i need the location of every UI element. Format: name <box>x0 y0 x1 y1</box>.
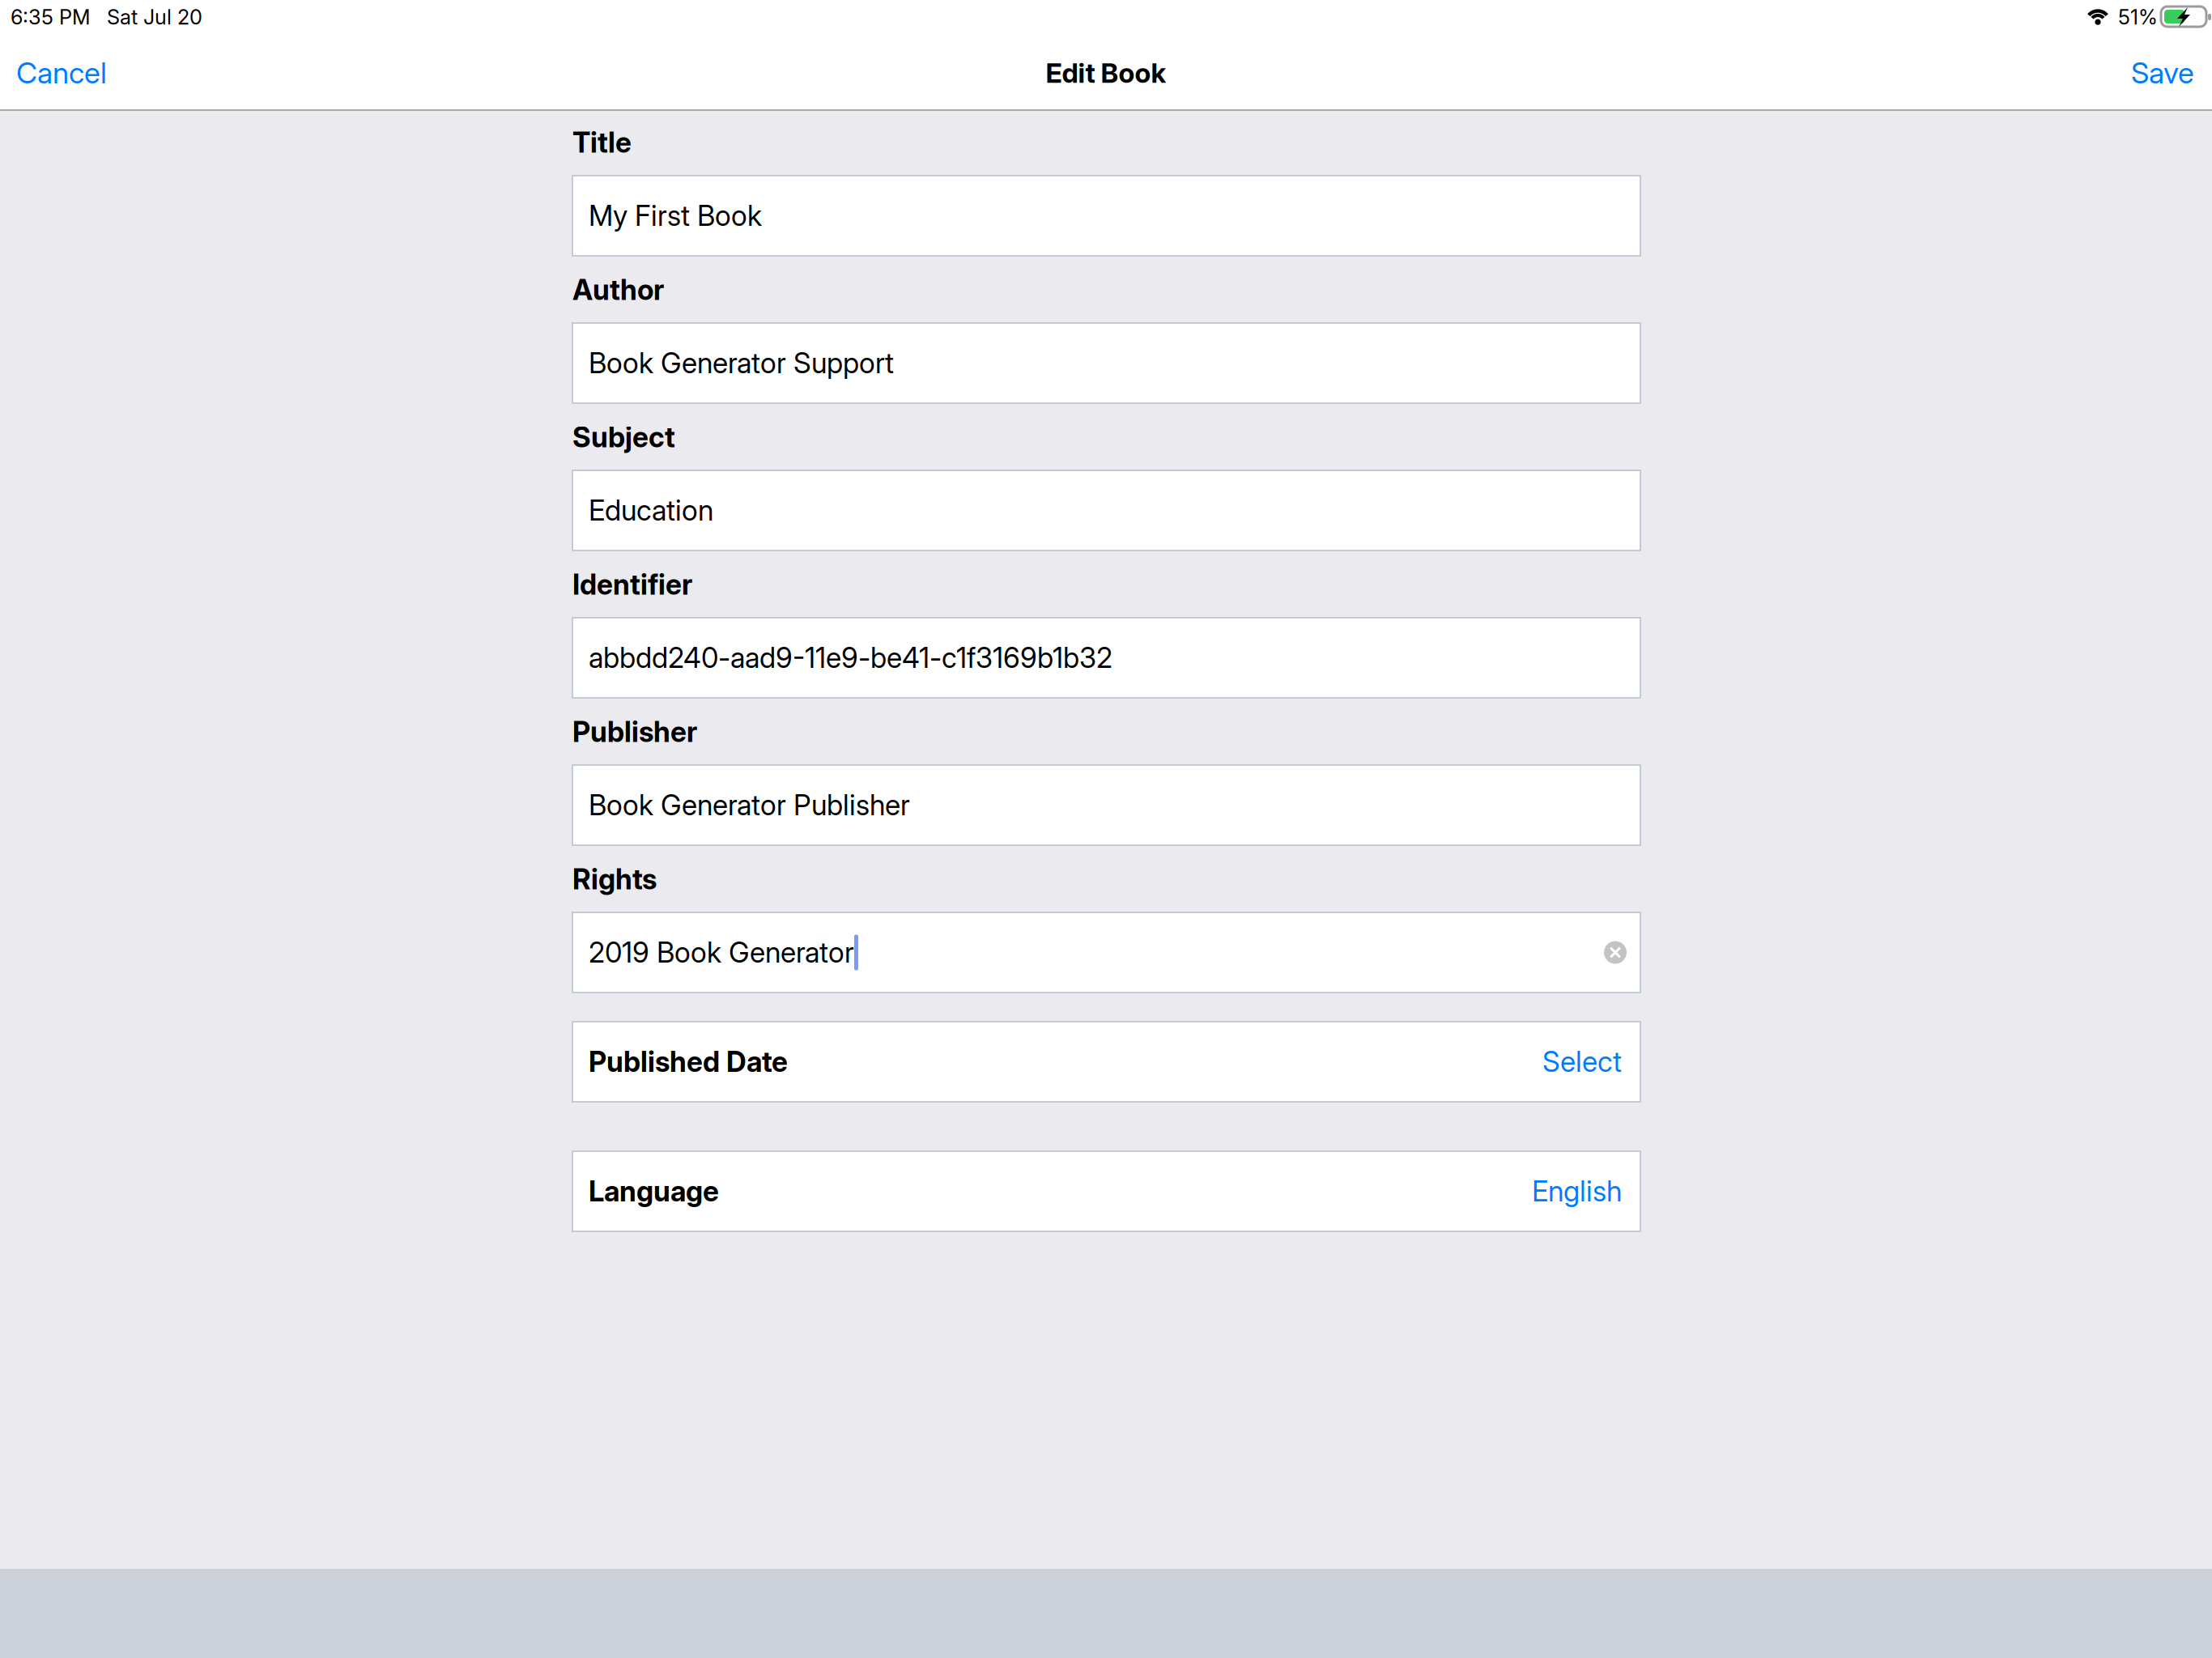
staticText: English <box>1532 1174 1622 1208</box>
staticText: Title <box>572 125 632 159</box>
staticText: Save <box>2131 55 2194 91</box>
button[interactable]: Clear text <box>1604 941 1627 964</box>
staticText: Publisher <box>572 715 697 749</box>
staticText: Book Generator Support <box>589 346 894 380</box>
staticText: 51% <box>2118 5 2158 29</box>
staticText: Book Generator Publisher <box>589 788 910 822</box>
staticText: Author <box>572 273 664 307</box>
staticText: My First Book <box>589 199 762 233</box>
staticText: Language <box>589 1174 719 1208</box>
button[interactable]: Cancel <box>16 50 227 96</box>
staticText: Cancel <box>16 55 107 91</box>
button[interactable]: Language <box>572 1151 1640 1231</box>
staticText: 6:35 PM <box>11 5 91 29</box>
staticText: Edit Book <box>1046 57 1166 89</box>
staticText: Select <box>1542 1045 1622 1079</box>
staticText: Identifier <box>572 568 692 601</box>
staticText: abbdd240-aad9-11e9-be41-c1f3169b1b32 <box>589 641 1112 675</box>
staticText: Published Date <box>589 1045 788 1079</box>
staticText: Education <box>589 493 713 527</box>
staticText: Rights <box>572 862 657 896</box>
button[interactable]: Published Date <box>572 1022 1640 1102</box>
button[interactable]: Save <box>2000 50 2194 96</box>
staticText: Sat Jul 20 <box>107 5 202 29</box>
staticText: Subject <box>572 420 675 454</box>
staticText: 2019 Book Generator <box>589 935 854 969</box>
